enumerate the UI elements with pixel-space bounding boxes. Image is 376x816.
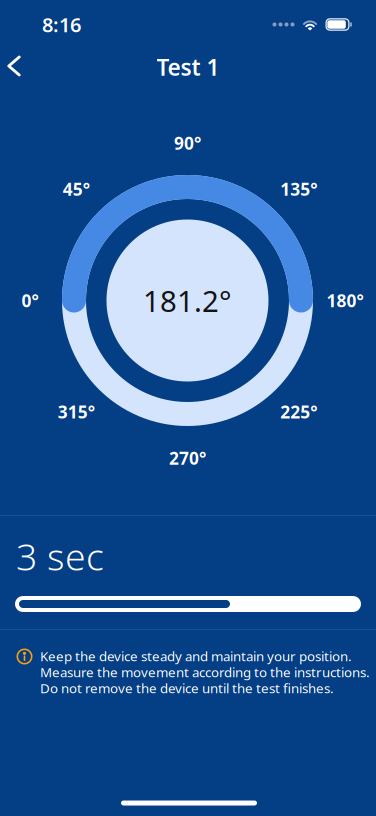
staticText: 270°	[169, 446, 206, 469]
staticText: 3 sec	[16, 531, 104, 581]
staticText: 135°	[280, 178, 317, 201]
staticText: Keep the device steady and maintain your…	[40, 647, 352, 665]
staticText: 8:16	[42, 11, 81, 38]
staticText: 315°	[58, 400, 95, 423]
staticText: 90°	[174, 131, 201, 154]
staticText: Do not remove the device until the test …	[40, 679, 334, 697]
button[interactable]: Back	[1, 45, 41, 87]
staticText: Test 1	[156, 52, 219, 82]
staticText: Measure the movement according to the in…	[40, 663, 370, 681]
staticText: 45°	[63, 178, 90, 201]
staticText: 180°	[326, 289, 363, 312]
staticText: 0°	[21, 289, 38, 312]
staticText: 225°	[280, 400, 317, 423]
staticText: 181.2°	[143, 281, 232, 320]
